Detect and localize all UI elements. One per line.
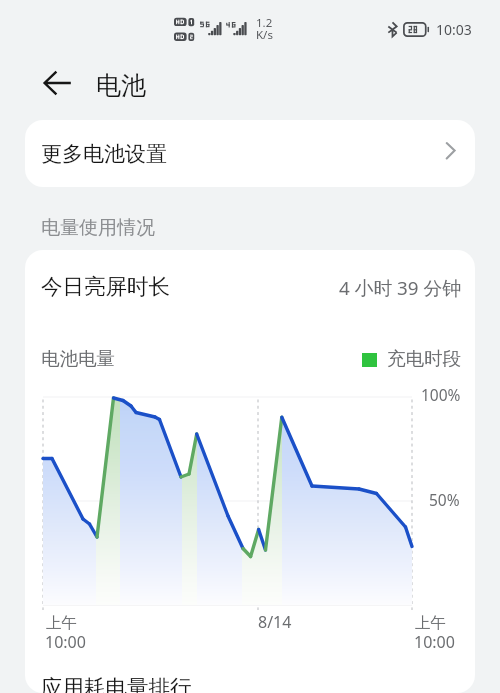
staticText: 电池	[96, 70, 146, 101]
staticText: 更多电池设置	[41, 141, 167, 167]
staticText: 100%	[421, 384, 461, 405]
staticText: 电池电量	[41, 347, 115, 370]
staticText: 电量使用情况	[41, 216, 155, 240]
button[interactable]	[25, 120, 475, 187]
staticText: 上午	[415, 613, 446, 633]
staticText: 今日亮屏时长	[41, 273, 170, 300]
staticText: 10:00	[414, 631, 455, 653]
staticText: 8/14	[258, 611, 292, 633]
staticText: 10:03	[436, 20, 472, 39]
staticText: 50%	[429, 489, 460, 510]
staticText: 1.2	[256, 15, 273, 31]
button[interactable]: 更多电池设置	[434, 134, 464, 168]
staticText: 10:00	[45, 631, 86, 653]
staticText: 应用耗电量排行	[41, 674, 192, 693]
button[interactable]: Back	[32, 62, 82, 106]
staticText: 充电时段	[387, 347, 461, 370]
staticText: K/s	[256, 27, 273, 43]
staticText: 上午	[46, 613, 77, 633]
staticText: 4 小时 39 分钟	[339, 275, 462, 301]
